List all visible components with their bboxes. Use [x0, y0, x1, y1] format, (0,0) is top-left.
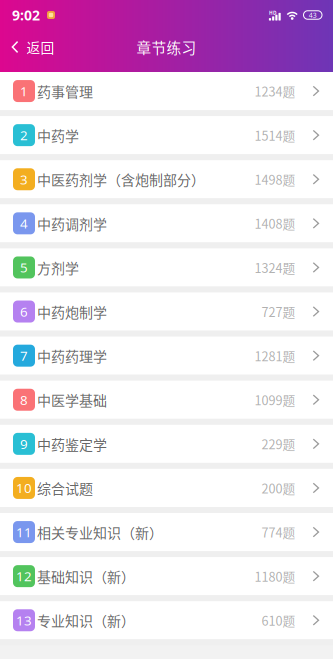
staticText: 章节练习: [136, 36, 196, 58]
staticText: 1498题: [254, 170, 295, 188]
button[interactable]: 11: [0, 513, 333, 551]
staticText: 中医学基础: [37, 390, 107, 410]
staticText: 1234题: [254, 82, 295, 100]
staticText: 5: [20, 258, 28, 277]
staticText: 7: [20, 347, 28, 365]
staticText: 2: [20, 126, 28, 144]
staticText: 9: [20, 435, 28, 453]
staticText: 综合试题: [37, 478, 93, 498]
staticText: 229题: [261, 435, 295, 453]
staticText: 中药学: [37, 125, 79, 145]
staticText: 返回: [26, 37, 54, 57]
staticText: 8: [20, 391, 28, 409]
staticText: 13: [16, 611, 32, 629]
staticText: 方剂学: [37, 257, 79, 278]
staticText: 9:02: [12, 5, 40, 25]
button[interactable]: 4: [0, 204, 333, 242]
staticText: 200题: [261, 479, 295, 497]
button[interactable]: 3: [0, 160, 333, 198]
button[interactable]: 1: [0, 72, 333, 110]
staticText: 中药药理学: [37, 345, 107, 366]
staticText: HD: [269, 9, 277, 16]
button[interactable]: 7: [0, 337, 333, 375]
button[interactable]: 13: [0, 601, 333, 639]
staticText: 基础知识（新）: [37, 566, 135, 586]
staticText: 专业知识（新）: [37, 610, 135, 630]
staticText: 4: [20, 214, 28, 232]
staticText: 3: [20, 170, 28, 188]
staticText: 1099题: [254, 391, 295, 409]
staticText: 6: [20, 302, 28, 321]
button[interactable]: 2: [0, 116, 333, 154]
staticText: 中药炮制学: [37, 301, 107, 322]
staticText: 中医药剂学（含炮制部分）: [37, 169, 205, 189]
button[interactable]: 6: [0, 292, 333, 331]
staticText: 11: [16, 523, 32, 541]
staticText: 12: [16, 567, 32, 585]
staticText: 727题: [261, 302, 295, 321]
staticText: 1408题: [254, 214, 295, 232]
staticText: 1514题: [254, 126, 295, 144]
staticText: 1: [20, 82, 28, 100]
staticText: 774题: [261, 523, 295, 541]
staticText: 1180题: [254, 567, 295, 585]
staticText: 610题: [261, 611, 295, 629]
staticText: 1324题: [254, 258, 295, 277]
staticText: 43: [309, 10, 317, 20]
button[interactable]: 9: [0, 425, 333, 463]
staticText: 相关专业知识（新）: [37, 522, 163, 542]
staticText: 1281题: [254, 346, 295, 365]
button[interactable]: 12: [0, 557, 333, 595]
staticText: 药事管理: [37, 81, 93, 101]
staticText: 10: [16, 479, 32, 497]
button[interactable]: 8: [0, 381, 333, 419]
button[interactable]: 返回: [0, 24, 66, 70]
staticText: 中药鉴定学: [37, 434, 107, 454]
staticText: 中药调剂学: [37, 213, 107, 233]
button[interactable]: 5: [0, 248, 333, 286]
button[interactable]: 10: [0, 469, 333, 507]
